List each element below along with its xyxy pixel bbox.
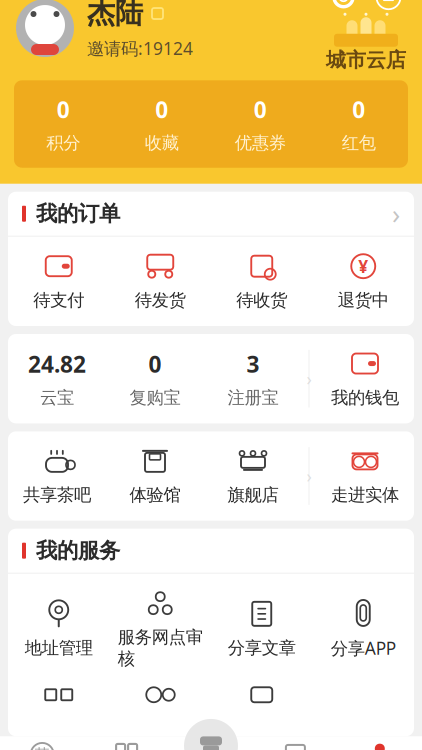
button[interactable]: 24.82 [8,349,106,408]
staticText: 待收货 [236,290,287,311]
staticText: 分享APP [331,636,396,659]
staticText: › [306,367,311,390]
button[interactable]: 0 [309,94,408,154]
staticText: 复购宝 [129,387,180,408]
button[interactable]: 分享APP [312,598,414,659]
button[interactable]: 共享茶吧 [8,446,106,506]
staticText: › [392,196,400,231]
staticText: 0 [57,94,70,124]
staticText: › [306,464,311,487]
button[interactable]: 分类 [84,736,169,750]
button[interactable]: 相册 [211,687,312,702]
staticText: 邀请码:19124 [87,37,193,60]
button[interactable]: 微信分享 [109,687,211,702]
button[interactable]: 我的订单 [8,192,414,236]
button[interactable]: 0 [14,94,112,154]
staticText: 我的订单 [36,201,120,227]
staticText: 城市云店 [326,48,406,72]
button[interactable]: 体验馆 [106,446,204,506]
button[interactable]: 0 [211,94,309,154]
button[interactable]: 待支付 [8,252,109,311]
staticText: 我的钱包 [331,387,399,408]
staticText: 0 [352,94,365,124]
button[interactable]: 走进实体 [316,446,414,506]
button[interactable]: 地址管理 [8,599,109,659]
staticText: 共享茶吧 [23,484,91,506]
button[interactable]: 我的 [338,736,422,750]
button[interactable]: 杰陆 [16,0,219,60]
staticText: 优惠券 [235,132,286,154]
staticText: 24.82 [28,349,86,379]
button[interactable]: 我的二维码 [8,688,109,702]
staticText: 0 [148,349,161,379]
button[interactable]: 0 [106,349,204,408]
staticText: 分享文章 [228,637,296,659]
staticText: 服务网点审核 [118,627,203,669]
staticText: ¥ [358,255,368,278]
button[interactable]: 消息 [375,0,402,11]
staticText: 云宝 [40,387,74,408]
button[interactable]: 旗舰店 [204,446,302,506]
staticText: 待发货 [135,290,186,311]
staticText: 地址管理 [25,637,93,659]
staticText: 注册宝 [227,387,278,408]
staticText: 我的服务 [36,538,120,564]
button[interactable]: 3 [204,349,302,408]
button[interactable]: 城市云店 [326,13,406,72]
button[interactable]: 待收货 [211,252,312,311]
staticText: 旗舰店 [227,484,278,506]
staticText: 0 [254,94,267,124]
button[interactable]: 茶 [0,736,84,750]
button[interactable]: ¥ [312,252,414,311]
staticText: 3 [246,349,259,379]
staticText: 走进实体 [331,484,399,506]
staticText: 待支付 [33,290,84,311]
staticText: 0 [155,94,168,124]
button[interactable]: 待发货 [109,252,211,311]
staticText: 红包 [342,132,376,154]
button[interactable]: 购物车 [253,736,338,750]
button[interactable]: 分享文章 [211,599,312,659]
staticText: 茶 [35,745,50,750]
button[interactable]: 服务网点审核 [109,589,211,669]
button[interactable]: 0 [112,94,211,154]
button[interactable]: 旗舰店 [169,719,253,750]
staticText: 杰陆 [87,0,143,31]
button[interactable]: 我的钱包 [316,349,414,408]
button[interactable]: 设置 [330,0,357,11]
staticText: 退货中 [338,290,389,311]
staticText: 收藏 [145,132,179,154]
staticText: 积分 [46,132,80,154]
staticText: 体验馆 [129,484,180,506]
